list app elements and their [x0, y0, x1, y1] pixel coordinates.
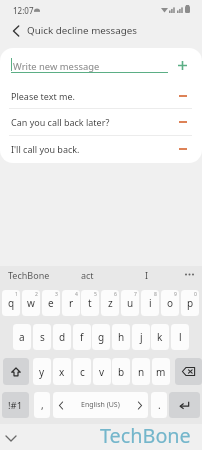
staticText: TechBone	[8, 269, 50, 281]
staticText: 2	[35, 291, 38, 298]
button[interactable]: backspace	[175, 358, 202, 385]
button[interactable]: g	[92, 324, 110, 350]
button[interactable]: I	[117, 266, 176, 283]
button[interactable]: m	[152, 358, 170, 385]
staticText: I	[145, 269, 149, 281]
button[interactable]: y	[33, 358, 51, 385]
staticText: v	[99, 365, 105, 379]
button[interactable]: e	[42, 290, 60, 316]
button[interactable]: n	[132, 358, 150, 385]
staticText: !#1	[8, 399, 23, 412]
button[interactable]: f	[73, 324, 91, 350]
button[interactable]: shift	[3, 358, 29, 385]
staticText: s	[40, 330, 45, 344]
button[interactable]: Delete message	[175, 114, 191, 130]
staticText: d	[59, 330, 66, 344]
staticText: r	[69, 296, 74, 310]
staticText: h	[118, 330, 125, 344]
button[interactable]: u	[121, 290, 139, 316]
button[interactable]: o	[161, 290, 179, 316]
button[interactable]: Hide keyboard	[3, 430, 19, 446]
staticText: Please text me.	[11, 90, 76, 102]
staticText: 1	[15, 291, 18, 298]
staticText: g	[98, 330, 105, 344]
button[interactable]: j	[132, 324, 150, 350]
button[interactable]: act	[58, 266, 117, 283]
staticText: m	[156, 365, 166, 379]
staticText: act	[81, 269, 94, 281]
button[interactable]: h	[112, 324, 130, 350]
staticText: n	[138, 365, 145, 379]
button[interactable]: symbols	[2, 392, 29, 418]
staticText: i	[149, 296, 152, 310]
staticText: q	[8, 296, 15, 310]
staticText: 9	[174, 291, 177, 298]
button[interactable]: Please text me.	[0, 82, 202, 109]
staticText: j	[140, 330, 143, 344]
staticText: z	[108, 296, 113, 310]
staticText: c	[80, 365, 85, 379]
staticText: 0	[194, 291, 197, 298]
button[interactable]: TechBone	[0, 266, 58, 283]
button[interactable]: More keyboard options	[176, 266, 202, 283]
staticText: x	[59, 365, 65, 379]
button[interactable]: d	[53, 324, 71, 350]
button[interactable]: English (US)	[53, 392, 148, 418]
staticText: o	[167, 296, 174, 310]
button[interactable]: q	[2, 290, 20, 316]
button[interactable]: k	[151, 324, 169, 350]
staticText: 12:07	[13, 5, 34, 16]
button[interactable]: Add new message	[174, 57, 190, 73]
button[interactable]: Navigate up	[6, 20, 26, 42]
staticText: f	[80, 330, 84, 344]
button[interactable]: .	[151, 392, 167, 418]
staticText: u	[127, 296, 134, 310]
button[interactable]: b	[112, 358, 130, 385]
staticText: p	[187, 296, 194, 310]
staticText: TechBone	[100, 422, 191, 448]
button[interactable]: ,	[34, 392, 50, 418]
staticText: b	[118, 365, 125, 379]
button[interactable]: r	[62, 290, 80, 316]
button[interactable]: w	[22, 290, 40, 316]
staticText: e	[48, 296, 54, 310]
button[interactable]: a	[13, 324, 31, 350]
button[interactable]: x	[53, 358, 71, 385]
button[interactable]: p	[181, 290, 199, 316]
button[interactable]: s	[33, 324, 51, 350]
staticText: t	[88, 296, 92, 310]
staticText: 3	[55, 291, 58, 298]
staticText: ,	[41, 398, 44, 412]
staticText: 5	[94, 291, 97, 298]
button[interactable]: Delete message	[175, 88, 191, 104]
staticText: Can you call back later?	[11, 116, 110, 128]
staticText: y	[39, 365, 45, 379]
staticText: 8	[154, 291, 157, 298]
staticText: Write new message	[13, 60, 100, 73]
button[interactable]: Can you call back later?	[0, 108, 202, 135]
button[interactable]: I'll call you back.	[0, 135, 202, 162]
staticText: l	[179, 330, 182, 344]
button[interactable]: z	[101, 290, 119, 316]
button[interactable]: v	[93, 358, 111, 385]
button[interactable]: Delete message	[175, 141, 191, 157]
button[interactable]: c	[73, 358, 91, 385]
staticText: k	[157, 330, 163, 344]
staticText: English (US)	[81, 400, 120, 410]
staticText: 7	[134, 291, 137, 298]
staticText: a	[19, 330, 25, 344]
button[interactable]: enter	[169, 392, 200, 418]
staticText: 6	[114, 291, 117, 298]
staticText: I'll call you back.	[11, 143, 80, 155]
button[interactable]: t	[81, 290, 99, 316]
staticText: 4	[75, 291, 78, 298]
staticText: .	[158, 398, 161, 412]
button[interactable]: l	[171, 324, 189, 350]
staticText: w	[27, 296, 35, 310]
staticText: Quick decline messages	[27, 24, 137, 37]
button[interactable]: i	[141, 290, 159, 316]
